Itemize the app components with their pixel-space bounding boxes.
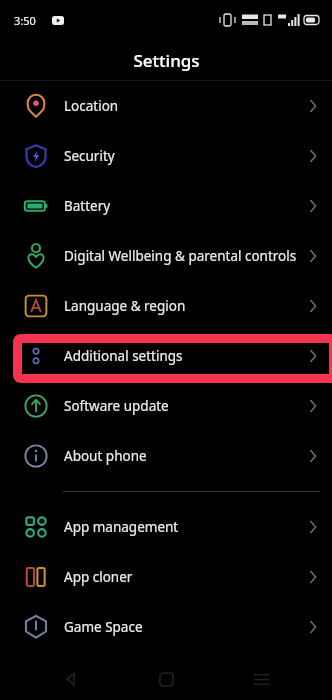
staticText: 3:50 <box>14 13 36 28</box>
button[interactable]: About phone <box>0 431 332 481</box>
staticText: App management <box>64 518 305 536</box>
staticText: Security <box>64 147 305 165</box>
staticText: Additional settings <box>64 347 305 365</box>
button[interactable]: Digital Wellbeing & parental controls <box>0 231 332 281</box>
button[interactable]: Battery <box>0 181 332 231</box>
button[interactable]: App cloner <box>0 552 332 602</box>
button[interactable]: Software update <box>0 381 332 431</box>
staticText: Battery <box>64 197 305 215</box>
staticText: About phone <box>64 447 305 465</box>
button[interactable]: Additional settings <box>0 331 332 381</box>
button[interactable]: Language & region <box>0 281 332 331</box>
button[interactable]: Recent apps <box>237 658 285 700</box>
button[interactable]: Security <box>0 131 332 181</box>
button[interactable]: Location <box>0 81 332 131</box>
staticText: Location <box>64 97 305 115</box>
button[interactable]: Game Space <box>0 602 332 652</box>
staticText: App cloner <box>64 568 305 586</box>
staticText: Settings <box>133 49 200 72</box>
button[interactable]: Home <box>142 658 190 700</box>
staticText: Language & region <box>64 297 305 315</box>
staticText: Game Space <box>64 618 305 636</box>
button[interactable]: Back <box>47 658 95 700</box>
staticText: Software update <box>64 397 305 415</box>
button[interactable]: App management <box>0 502 332 552</box>
staticText: Digital Wellbeing & parental controls <box>64 247 305 265</box>
